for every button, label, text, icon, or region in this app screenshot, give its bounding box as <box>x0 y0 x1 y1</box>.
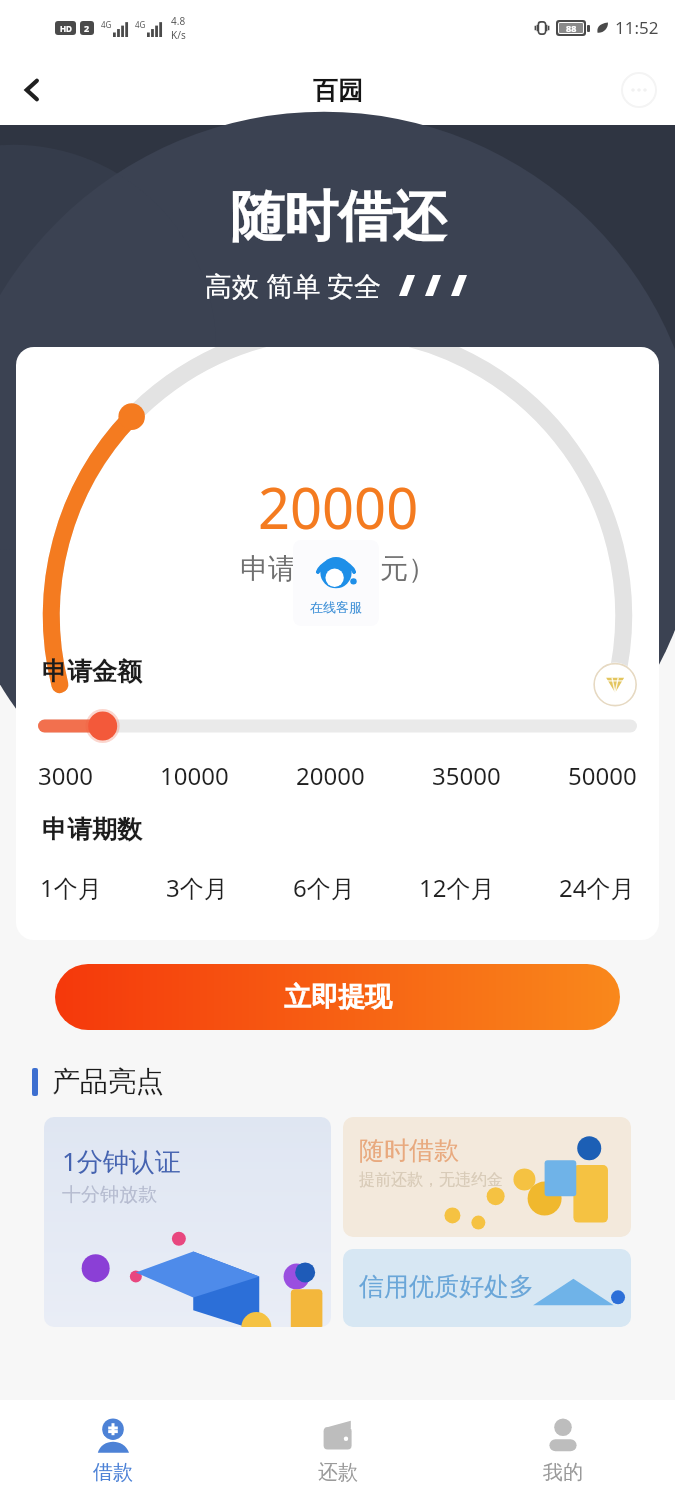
staticText: 2 <box>84 22 90 34</box>
staticText: 20000 <box>258 469 419 545</box>
staticText: 我的 <box>543 1460 583 1485</box>
button[interactable]: 24个月 <box>557 869 637 906</box>
button[interactable] <box>38 709 637 743</box>
staticText: 立即提现 <box>284 980 392 1014</box>
button[interactable]: 1个月 <box>38 869 104 906</box>
button[interactable]: 我的 <box>450 1400 675 1500</box>
button[interactable]: 12个月 <box>417 869 497 906</box>
staticText: 随时借款 <box>359 1135 459 1166</box>
staticText: 申请金额 <box>42 656 142 687</box>
staticText: 11:52 <box>615 16 659 39</box>
staticText: 35000 <box>432 759 501 792</box>
button[interactable]: 借款 <box>0 1400 225 1500</box>
staticText: 申请金额（元） <box>240 551 436 586</box>
staticText: 还款 <box>318 1460 358 1485</box>
staticText: 10000 <box>160 759 229 792</box>
button[interactable]: 3个月 <box>164 869 230 906</box>
staticText: 随时借还 <box>230 183 446 251</box>
staticText: 12个月 <box>419 871 495 904</box>
staticText: 6个月 <box>293 871 355 904</box>
staticText: 百园 <box>313 75 363 106</box>
staticText: 3000 <box>38 759 93 792</box>
button[interactable]: Back <box>8 66 56 114</box>
button[interactable]: More options <box>617 68 661 112</box>
staticText: 4G <box>101 19 112 30</box>
button[interactable]: 6个月 <box>291 869 357 906</box>
staticText: 88 <box>566 22 577 34</box>
staticText: 24个月 <box>559 871 635 904</box>
staticText: 4.8 <box>171 14 186 28</box>
staticText: 1个月 <box>40 871 102 904</box>
button[interactable]: 信用优质好处多 <box>343 1249 631 1327</box>
staticText: 借款 <box>93 1460 133 1485</box>
staticText: 产品亮点 <box>52 1064 164 1099</box>
staticText: K/s <box>171 28 186 42</box>
staticText: 信用优质好处多 <box>359 1271 534 1302</box>
staticText: 申请期数 <box>42 814 142 845</box>
staticText: 提前还款，无违约金 <box>359 1170 503 1190</box>
button[interactable]: 随时借款 <box>343 1117 631 1237</box>
staticText: 1分钟认证 <box>62 1143 181 1179</box>
button[interactable]: 立即提现 <box>55 964 620 1030</box>
button[interactable]: 在线客服 <box>293 540 379 626</box>
staticText: 十分钟放款 <box>62 1183 157 1207</box>
staticText: 20000 <box>296 759 365 792</box>
staticText: 高效 简单 安全 <box>205 267 382 304</box>
staticText: 50000 <box>568 759 637 792</box>
staticText: 4G <box>135 19 146 30</box>
staticText: 在线客服 <box>310 599 362 615</box>
button[interactable]: 1分钟认证 <box>44 1117 331 1327</box>
button[interactable]: 还款 <box>225 1400 450 1500</box>
staticText: HD <box>60 23 72 34</box>
staticText: 3个月 <box>166 871 228 904</box>
